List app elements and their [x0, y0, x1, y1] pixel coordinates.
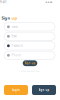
- button[interactable]: Sign up: [23, 60, 37, 66]
- button[interactable]: Already have an account?: [20, 70, 39, 72]
- staticText: Phone: [11, 53, 21, 57]
- staticText: 9:41: [0, 0, 7, 4]
- staticText: Sign up: [24, 61, 35, 65]
- staticText: Name: [11, 25, 18, 28]
- button[interactable]: Name: [4, 23, 55, 31]
- button[interactable]: Sign up: [32, 85, 56, 95]
- staticText: Email: [11, 34, 17, 38]
- staticText: Sign up: [38, 88, 49, 92]
- button[interactable]: Password: [4, 42, 55, 50]
- staticText: up: [11, 15, 17, 21]
- button[interactable]: Phone: [4, 51, 55, 59]
- staticText: Password: [11, 44, 23, 47]
- staticText: Sign: [1, 15, 11, 21]
- staticText: Already have an account?: [20, 70, 39, 72]
- button[interactable]: Login: [4, 85, 28, 95]
- staticText: Login: [12, 88, 20, 92]
- button[interactable]: Email: [4, 32, 55, 40]
